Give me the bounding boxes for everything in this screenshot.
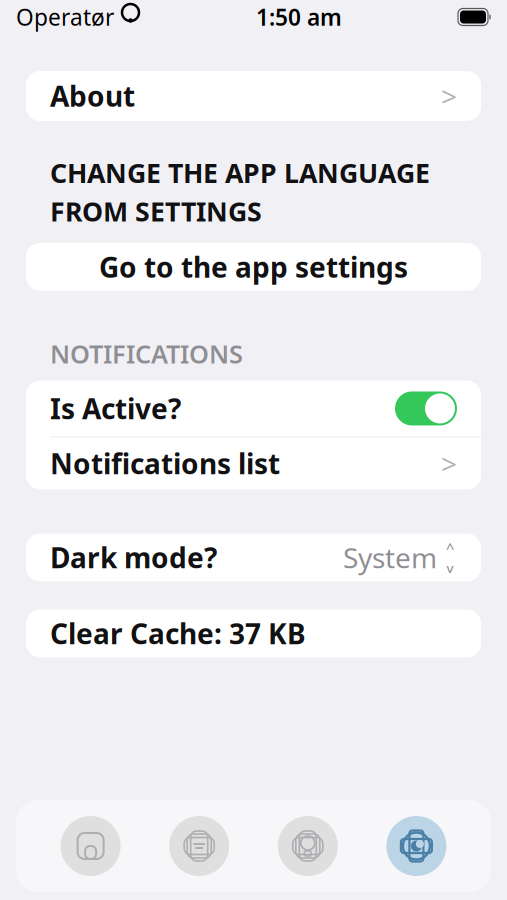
button[interactable]: Notifications list (26, 437, 481, 489)
staticText: Dark mode? (50, 539, 217, 576)
button[interactable]: About (26, 71, 481, 121)
button[interactable]: Home (53, 808, 129, 884)
staticText: System (343, 539, 437, 576)
staticText: About (50, 77, 135, 115)
button[interactable]: Tips (270, 808, 346, 884)
staticText: CHANGE THE APP LANGUAGE (50, 155, 430, 190)
staticText: 1:50 am (256, 2, 342, 32)
staticText: Clear Cache: 37 KB (50, 615, 306, 652)
button[interactable]: Clear Cache: 37 KB (26, 609, 481, 657)
staticText: Is Active? (50, 390, 181, 427)
staticText: ^ (446, 538, 454, 558)
staticText: Operatør (16, 2, 114, 32)
staticText: v (446, 559, 453, 577)
staticText: > (441, 445, 457, 482)
staticText: FROM SETTINGS (50, 193, 262, 229)
staticText: Go to the app settings (99, 248, 408, 285)
button[interactable]: Settings (378, 808, 454, 884)
staticText: > (441, 77, 457, 115)
button[interactable]: Dark mode? (26, 533, 481, 581)
staticText: Notifications list (50, 445, 280, 482)
button[interactable]: Go to the app settings (26, 243, 481, 291)
button[interactable]: Is Active? (26, 380, 481, 436)
button[interactable]: Quran (161, 808, 237, 884)
staticText: NOTIFICATIONS (50, 337, 243, 370)
